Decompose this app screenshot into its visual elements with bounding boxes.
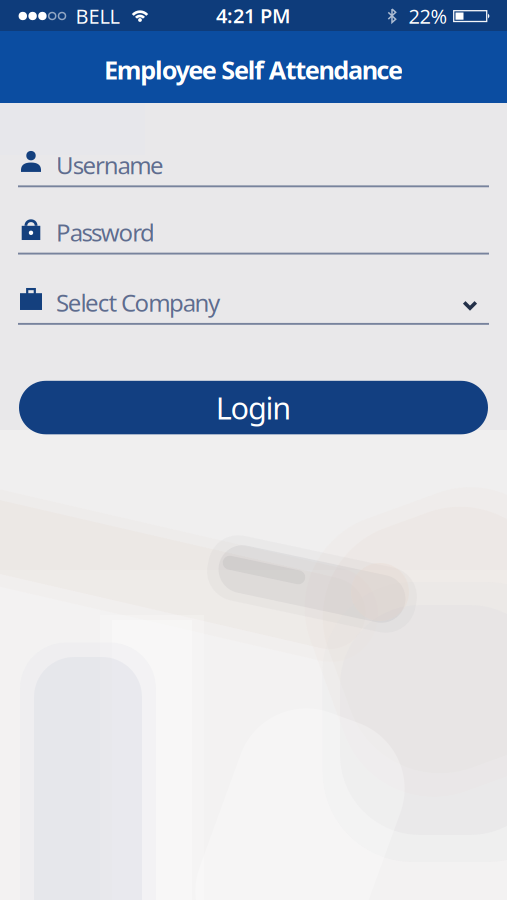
button[interactable]: Username	[0, 145, 507, 187]
staticText: Login	[216, 387, 291, 428]
button[interactable]: Password	[0, 213, 507, 255]
staticText: Select Company	[56, 286, 220, 318]
staticText: Username	[56, 149, 164, 181]
staticText: Password	[56, 216, 155, 248]
staticText: 22%	[408, 3, 447, 29]
staticText: 4:21 PM	[216, 2, 291, 29]
button[interactable]: Login	[0, 381, 507, 434]
staticText: BELL	[75, 3, 119, 29]
staticText: Employee Self Attendance	[104, 53, 403, 86]
button[interactable]: Select Company	[0, 283, 507, 325]
